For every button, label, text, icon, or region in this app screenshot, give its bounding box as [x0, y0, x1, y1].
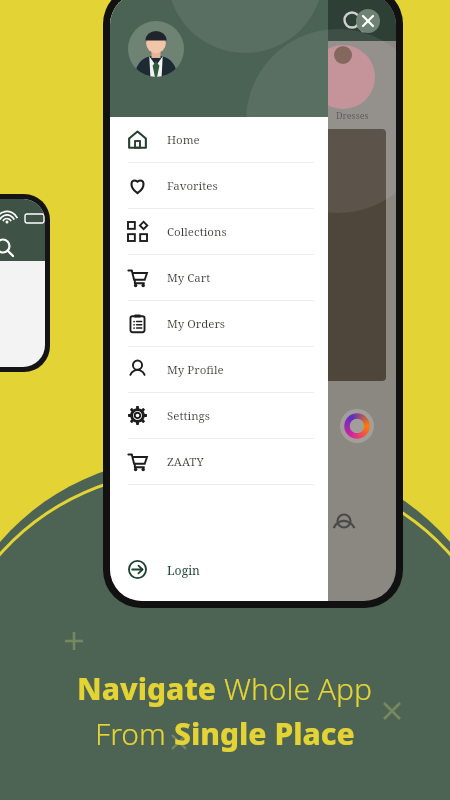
staticText: My Orders [167, 316, 226, 332]
staticText: My Profile [167, 362, 224, 378]
button[interactable]: Login [110, 560, 328, 601]
button[interactable]: Home [110, 117, 328, 163]
button[interactable]: My Cart [110, 255, 328, 301]
staticText: From [95, 713, 174, 754]
staticText: ZAATY [167, 454, 204, 470]
staticText: Single Place [174, 713, 355, 754]
button[interactable]: ZAATY [110, 439, 328, 485]
staticText: Whole App [224, 668, 373, 709]
button[interactable]: Settings [110, 393, 328, 439]
staticText: My Cart [167, 270, 211, 286]
button[interactable]: Collections [110, 209, 328, 255]
staticText: Settings [167, 408, 210, 424]
button[interactable]: Favorites [110, 163, 328, 209]
staticText: Collections [167, 224, 227, 240]
staticText: Login [167, 562, 200, 578]
button[interactable]: My Profile [110, 347, 328, 393]
staticText: Home [167, 132, 200, 148]
button[interactable]: My Orders [110, 301, 328, 347]
button[interactable]: Close menu [356, 9, 380, 33]
staticText: Dresses [336, 109, 369, 121]
staticText: Favorites [167, 178, 218, 194]
staticText: Navigate [77, 668, 224, 709]
